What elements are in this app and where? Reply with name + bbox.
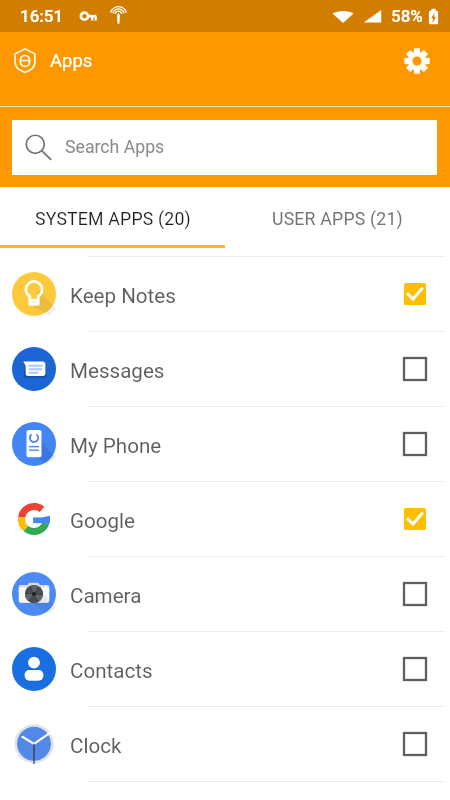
staticText: USER APPS (21) <box>272 209 403 230</box>
button[interactable]: Keep Notes <box>0 257 450 332</box>
staticText: Google <box>70 509 136 533</box>
staticText: 16:51 <box>20 6 64 26</box>
button[interactable]: USER APPS (21) <box>225 189 450 250</box>
staticText: Contacts <box>70 659 153 683</box>
button[interactable]: Contacts <box>0 632 450 707</box>
staticText: Messages <box>70 359 165 383</box>
staticText: Clock <box>70 734 122 758</box>
staticText: Apps <box>50 50 93 72</box>
button[interactable]: Search Apps <box>12 120 437 175</box>
staticText: Search Apps <box>65 137 165 158</box>
button[interactable]: Camera <box>0 557 450 632</box>
staticText: My Phone <box>70 434 162 458</box>
button[interactable]: Settings <box>394 38 440 84</box>
button[interactable]: Google <box>0 482 450 557</box>
button[interactable]: SYSTEM APPS (20) <box>0 189 225 250</box>
staticText: Keep Notes <box>70 284 176 308</box>
button[interactable]: Messages <box>0 332 450 407</box>
button[interactable]: My Phone <box>0 407 450 482</box>
staticText: 58% <box>391 6 423 26</box>
button[interactable]: Clock <box>0 707 450 782</box>
staticText: SYSTEM APPS (20) <box>35 209 191 230</box>
staticText: Camera <box>70 584 142 608</box>
